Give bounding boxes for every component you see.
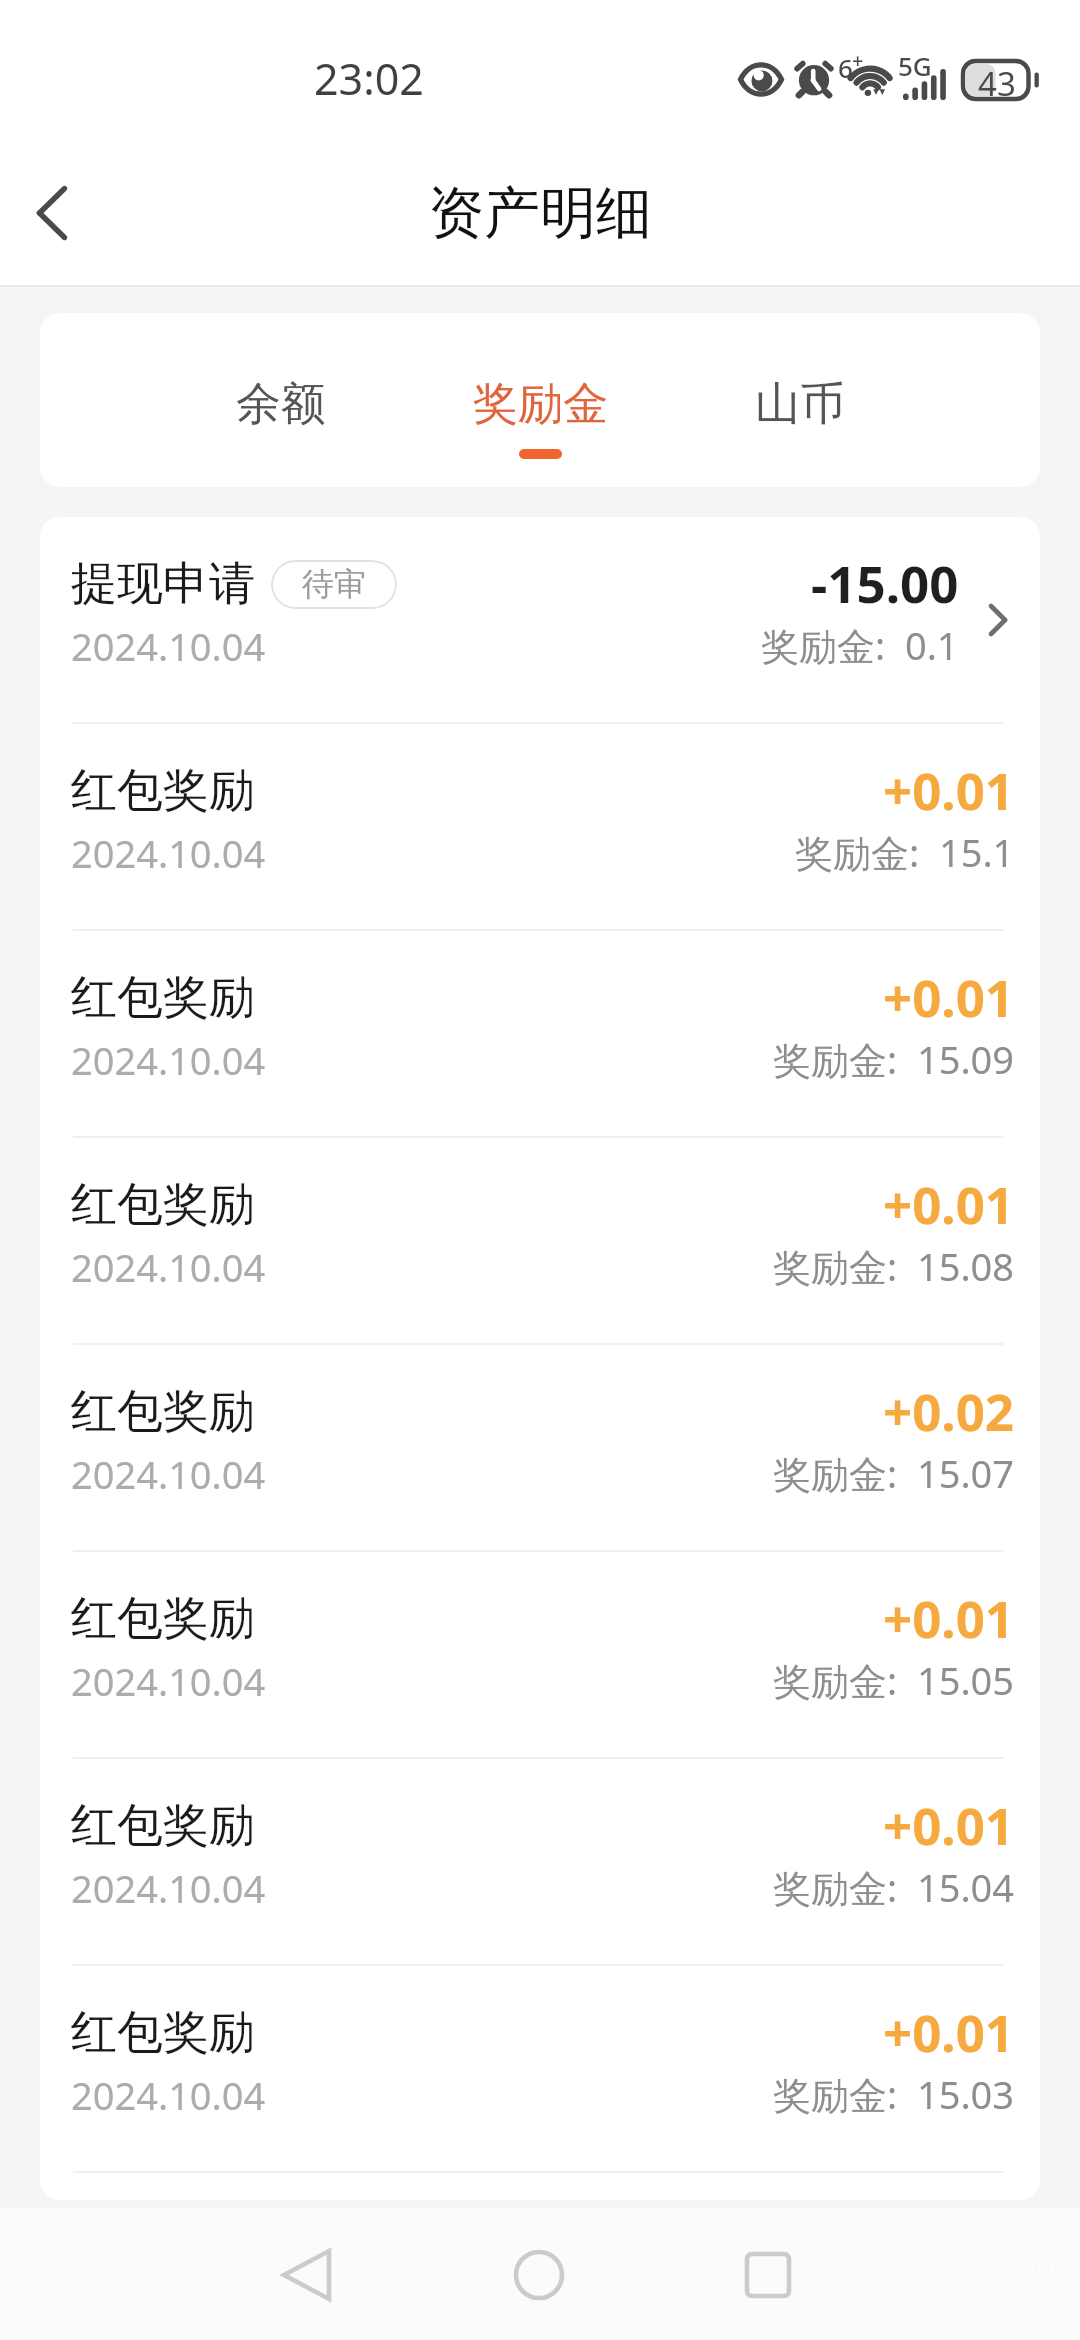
staticText: +0.01 [883, 962, 1015, 1031]
staticText: 2024.10.04 [71, 1862, 266, 1914]
staticText: 奖励金: 15.09 [773, 1033, 1015, 1085]
staticText: 奖励金: 15.04 [773, 1861, 1015, 1913]
staticText: 待审 [302, 564, 366, 604]
staticText: 奖励金 [473, 376, 608, 433]
staticText: -15.00 [811, 548, 959, 617]
staticText: 资产明细 [428, 178, 652, 249]
staticText: 奖励金: 15.07 [773, 1447, 1015, 1499]
staticText: +0.02 [883, 1376, 1015, 1445]
staticText: 奖励金: 15.1 [795, 826, 1015, 878]
staticText: 43 [978, 61, 1016, 106]
button[interactable]: 红包奖励 [40, 1345, 1040, 1550]
button[interactable]: Home [489, 2225, 589, 2325]
button[interactable]: 红包奖励 [40, 1759, 1040, 1964]
staticText: 2024.10.04 [71, 620, 266, 672]
button[interactable]: Back [12, 173, 92, 253]
staticText: 红包奖励 [71, 969, 255, 1027]
button[interactable]: 红包奖励 [40, 1552, 1040, 1757]
staticText: 奖励金: 15.08 [773, 1240, 1015, 1292]
staticText: 2024.10.04 [71, 827, 266, 879]
button[interactable]: 红包奖励 [40, 1966, 1040, 2171]
staticText: 23:02 [314, 49, 424, 108]
button[interactable]: 红包奖励 [40, 724, 1040, 929]
staticText: 2024.10.04 [71, 1034, 266, 1086]
staticText: +0.01 [883, 1997, 1015, 2066]
button[interactable]: 余额 [151, 313, 411, 487]
staticText: 红包奖励 [71, 2004, 255, 2062]
button[interactable]: 红包奖励 [40, 1138, 1040, 1343]
button[interactable]: 奖励金 [411, 313, 670, 487]
staticText: 红包奖励 [71, 1383, 255, 1441]
staticText: 5G [898, 48, 932, 83]
staticText: 山币 [755, 376, 845, 433]
staticText: +0.01 [883, 1583, 1015, 1652]
staticText: 2024.10.04 [71, 2069, 266, 2121]
staticText: 奖励金: 15.05 [773, 1654, 1015, 1706]
button[interactable]: 红包奖励 [40, 931, 1040, 1136]
staticText: 奖励金: 15.03 [773, 2068, 1015, 2120]
staticText: 红包奖励 [71, 1590, 255, 1648]
button[interactable]: Back [258, 2225, 358, 2325]
button[interactable]: Recents [718, 2225, 818, 2325]
staticText: 红包奖励 [71, 762, 255, 820]
staticText: +0.01 [883, 1790, 1015, 1859]
button[interactable]: 提现申请 [40, 517, 1040, 722]
staticText: 6 [838, 50, 853, 85]
staticText: 提现申请 [71, 555, 255, 613]
staticText: +0.01 [883, 1169, 1015, 1238]
staticText: 红包奖励 [71, 1176, 255, 1234]
button[interactable]: 山币 [670, 313, 929, 487]
staticText: 2024.10.04 [71, 1241, 266, 1293]
staticText: 红包奖励 [71, 1797, 255, 1855]
staticText: +0.01 [883, 755, 1015, 824]
staticText: 2024.10.04 [71, 1655, 266, 1707]
staticText: 2024.10.04 [71, 1448, 266, 1500]
staticText: 余额 [236, 376, 326, 433]
staticText: + [852, 47, 864, 74]
staticText: 奖励金: 0.1 [761, 619, 959, 671]
